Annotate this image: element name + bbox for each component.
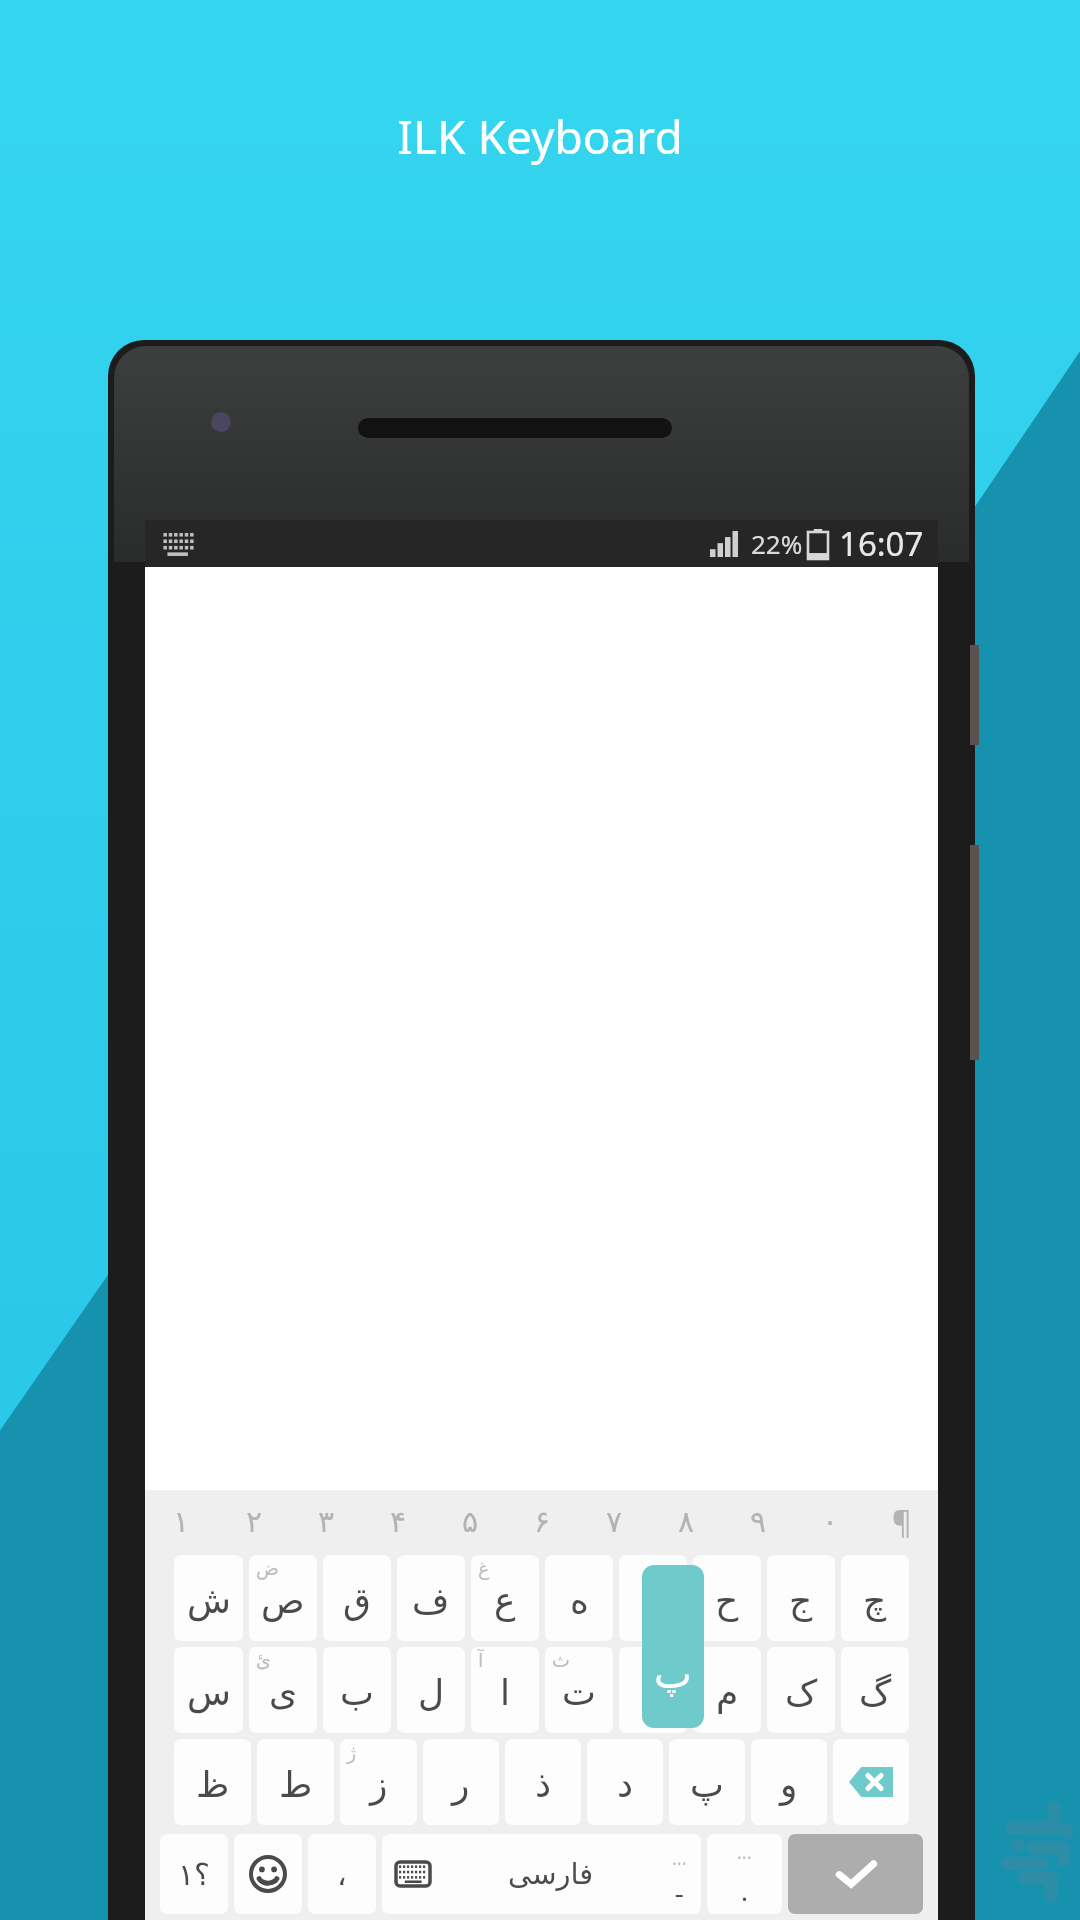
staticText: ... [737,1840,752,1865]
button[interactable]: ق [323,1555,391,1641]
staticText: ۹ [750,1504,767,1539]
staticText: ـ [676,1877,683,1903]
staticText: فارسی [508,1857,594,1891]
staticText: آ [478,1649,484,1671]
button[interactable]: ر [423,1739,499,1825]
staticText: ق [343,1580,371,1622]
staticText: خ [641,1580,665,1622]
staticText: ف [412,1580,450,1622]
staticText: ئ [256,1649,271,1671]
button[interactable]: ۲ [218,1490,290,1552]
button[interactable]: ۹ [722,1490,794,1552]
staticText: ۷ [606,1504,623,1539]
staticText: غ [478,1557,490,1579]
staticText: و [780,1764,798,1806]
staticText: ی [269,1672,298,1714]
button[interactable]: ژ [340,1739,417,1825]
button[interactable]: گ [841,1647,909,1733]
button[interactable]: ۱؟ [160,1834,228,1914]
button[interactable]: Backspace [833,1739,909,1825]
staticText: ¶ [892,1501,912,1542]
staticText: ژ [347,1741,357,1763]
staticText: ظ [196,1764,230,1806]
staticText: پ [654,1651,692,1698]
staticText: ذ [535,1764,552,1806]
button[interactable]: ۱ [145,1490,218,1552]
button[interactable]: ۳ [290,1490,362,1552]
button[interactable]: فارسی [382,1834,701,1914]
button[interactable]: ض [249,1555,317,1641]
button[interactable]: ح [693,1555,761,1641]
staticText: ۳ [318,1504,335,1539]
staticText: ت [562,1672,596,1714]
button[interactable]: ... [707,1834,782,1914]
staticText: ش [187,1580,231,1622]
staticText: ۱؟ [178,1857,211,1892]
staticText: ص [261,1580,305,1622]
button[interactable]: د [587,1739,663,1825]
staticText: پ [690,1764,724,1806]
staticText: ۵ [462,1504,479,1539]
staticText: ۴ [390,1504,407,1539]
staticText: ILK Keyboard [397,105,683,168]
button[interactable]: پ [669,1739,745,1825]
button[interactable]: ه [545,1555,613,1641]
button[interactable]: و [751,1739,827,1825]
staticText: چ [863,1580,887,1622]
button[interactable]: ۵ [434,1490,506,1552]
staticText: ۰ [822,1504,839,1539]
staticText: ض [256,1557,279,1579]
staticText: . [741,1873,748,1908]
staticText: 22% [751,526,803,561]
button[interactable]: ، [308,1834,376,1914]
button[interactable]: ش [174,1555,243,1641]
staticText: ، [337,1857,347,1892]
button[interactable]: ئ [249,1647,317,1733]
staticText: ر [452,1764,470,1806]
staticText: ه [570,1580,589,1622]
button[interactable]: ن [619,1647,687,1733]
button[interactable]: ظ [174,1739,251,1825]
staticText: ز [370,1764,388,1806]
staticText: ح [715,1580,739,1622]
button[interactable]: ک [767,1647,835,1733]
button[interactable]: ۶ [506,1490,578,1552]
staticText: ط [279,1764,313,1806]
button[interactable]: ¶ [866,1490,938,1552]
button[interactable]: ب [323,1647,391,1733]
button[interactable]: آ [471,1647,539,1733]
button[interactable]: خ [619,1555,687,1641]
button[interactable]: ط [257,1739,334,1825]
button[interactable]: ۴ [362,1490,434,1552]
staticText: م [716,1672,739,1714]
button[interactable]: ۷ [578,1490,650,1552]
staticText: ج [789,1580,813,1622]
button[interactable]: ل [397,1647,465,1733]
button[interactable]: چ [841,1555,909,1641]
staticText: ۲ [246,1504,263,1539]
button[interactable]: ذ [505,1739,581,1825]
button[interactable]: س [174,1647,243,1733]
button[interactable]: ۸ [650,1490,722,1552]
staticText: ع [494,1580,516,1622]
staticText: ک [785,1672,818,1714]
staticText: ۶ [534,1504,551,1539]
staticText: د [617,1764,634,1806]
button[interactable]: ث [545,1647,613,1733]
staticText: س [187,1672,231,1714]
button[interactable]: Enter [788,1834,923,1914]
button[interactable]: ج [767,1555,835,1641]
staticText: ا [500,1672,511,1714]
button[interactable]: ف [397,1555,465,1641]
staticText: گ [859,1672,892,1714]
staticText: ... [672,1846,687,1871]
staticText: ن [640,1672,667,1714]
button[interactable]: Emoji [234,1834,302,1914]
staticText: ل [418,1672,445,1714]
button[interactable]: م [693,1647,761,1733]
staticText: ۱ [173,1504,190,1539]
staticText: ب [340,1672,374,1714]
button[interactable]: غ [471,1555,539,1641]
staticText: ۸ [678,1504,695,1539]
